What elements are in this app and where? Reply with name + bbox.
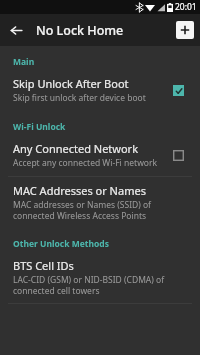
staticText: LAC-CID (GSM) or NID-BSID (CDMA) of conn… xyxy=(13,274,190,296)
staticText: 20:01 xyxy=(175,1,197,13)
staticText: Any Connected Network xyxy=(13,141,139,156)
staticText: Accept any connected Wi-Fi network xyxy=(13,157,158,169)
button[interactable]: Navigate up xyxy=(0,14,32,46)
staticText: BTS Cell IDs xyxy=(13,258,74,273)
button[interactable]: MAC Addresses or Names xyxy=(0,177,200,228)
staticText: MAC Addresses or Names xyxy=(13,183,146,198)
staticText: Other Unlock Methods xyxy=(13,238,109,250)
button[interactable]: Skip Unlock After Boot xyxy=(0,70,200,111)
button[interactable]: Checked xyxy=(166,78,190,102)
staticText: MAC addresses or Names (SSID) of connect… xyxy=(13,199,190,221)
staticText: Skip Unlock After Boot xyxy=(13,76,129,91)
staticText: Wi-Fi Unlock xyxy=(13,121,66,133)
staticText: No Lock Home xyxy=(36,22,124,39)
button[interactable]: Unchecked xyxy=(166,143,190,167)
staticText: Main xyxy=(13,56,35,68)
button[interactable]: Any Connected Network xyxy=(0,135,200,176)
staticText: Skip first unlock after device boot xyxy=(13,92,146,104)
button[interactable]: BTS Cell IDs xyxy=(0,252,200,303)
button[interactable]: Add xyxy=(176,21,194,39)
